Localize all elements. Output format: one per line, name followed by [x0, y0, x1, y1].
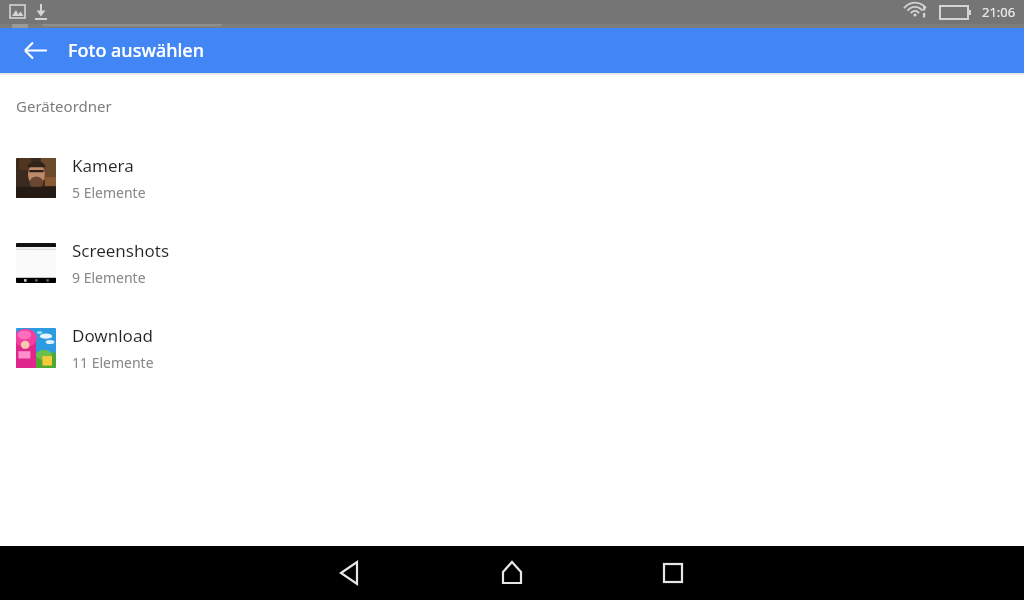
staticText: 5 Elemente: [72, 183, 146, 202]
staticText: 9 Elemente: [72, 268, 146, 287]
staticText: Kamera: [72, 154, 134, 177]
staticText: 21:06: [982, 3, 1016, 21]
button[interactable]: Übersicht: [649, 549, 697, 597]
button[interactable]: Zurück: [12, 28, 60, 73]
staticText: Foto auswählen: [68, 38, 204, 63]
button[interactable]: Zurück: [326, 549, 374, 597]
button[interactable]: Kamera: [0, 135, 1024, 220]
staticText: Screenshots: [72, 239, 170, 262]
staticText: 11 Elemente: [72, 353, 154, 372]
staticText: Download: [72, 324, 153, 347]
button[interactable]: Startbildschirm: [488, 549, 536, 597]
staticText: Geräteordner: [16, 96, 112, 116]
button[interactable]: Download: [0, 305, 1024, 390]
button[interactable]: Screenshots: [0, 220, 1024, 305]
